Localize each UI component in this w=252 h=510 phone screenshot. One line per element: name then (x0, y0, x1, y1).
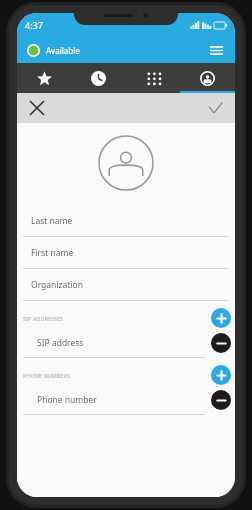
button[interactable]: Organization (17, 269, 235, 301)
button[interactable]: Add photo (98, 135, 154, 191)
button[interactable]: Remove Phone number (211, 390, 231, 410)
staticText: 4:37 (25, 19, 43, 31)
button[interactable]: Favorites (17, 63, 71, 93)
button[interactable]: Remove SIP address (211, 333, 231, 353)
button[interactable]: SIP address (17, 329, 196, 357)
button[interactable]: Recents (71, 63, 125, 93)
staticText: Available (46, 45, 80, 56)
button[interactable]: Last name (17, 205, 235, 237)
staticText: PHONE NUMBERS (23, 372, 71, 379)
button[interactable]: Phone number (17, 386, 196, 414)
button[interactable]: Save (203, 96, 227, 120)
button[interactable]: Contacts (180, 63, 235, 93)
staticText: Phone number (37, 394, 97, 406)
staticText: SIP ADDRESSES (23, 315, 64, 322)
button[interactable]: Add PHONE NUMBERS (211, 365, 231, 385)
staticText: Organization (31, 279, 83, 291)
button[interactable]: Cancel (25, 96, 49, 120)
button[interactable]: Add SIP ADDRESSES (211, 308, 231, 328)
button[interactable]: Available (25, 42, 82, 59)
button[interactable]: Menu (205, 39, 227, 61)
staticText: First name (31, 247, 74, 259)
staticText: Last name (31, 215, 73, 227)
button[interactable]: Dialpad (125, 63, 180, 93)
staticText: SIP address (37, 337, 84, 349)
button[interactable]: First name (17, 237, 235, 269)
